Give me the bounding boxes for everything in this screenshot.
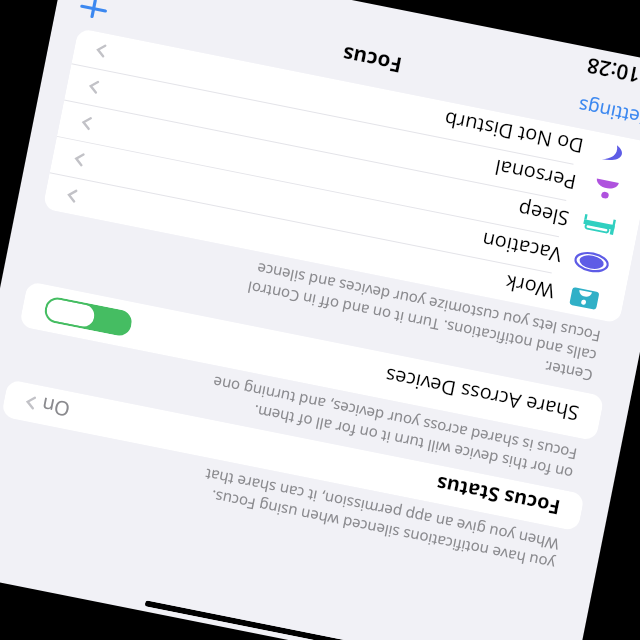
staticText: 10:28: [584, 54, 640, 90]
staticText: Settings: [575, 93, 640, 132]
staticText: On: [39, 391, 72, 423]
staticText: Personal: [492, 153, 578, 196]
button[interactable]: Sleep: [57, 101, 640, 251]
staticText: Focus Status: [434, 470, 562, 521]
button[interactable]: Share Across Devices: [19, 281, 605, 441]
staticText: you have notifications silenced when usi…: [209, 486, 556, 574]
button[interactable]: Vacation: [50, 137, 633, 287]
button[interactable]: Personal: [64, 64, 640, 215]
staticText: Work: [502, 269, 557, 305]
button[interactable]: Settings: [575, 93, 640, 135]
button[interactable]: Do Not Disturb: [71, 28, 640, 178]
button[interactable]: Work: [42, 173, 626, 324]
staticText: Vacation: [479, 226, 564, 269]
staticText: Center.: [542, 357, 594, 386]
staticText: on for this device will turn it on for a…: [251, 401, 575, 484]
staticText: Sleep: [516, 196, 571, 232]
staticText: Focus: [340, 39, 404, 80]
staticText: When you give an app permission, it can …: [203, 465, 560, 555]
staticText: Focus lets you customize your devices an…: [255, 259, 602, 347]
button[interactable]: Focus Status: [1, 379, 585, 532]
staticText: Share Across Devices: [383, 362, 581, 427]
button[interactable]: Add Focus: [79, 0, 108, 19]
button[interactable]: Share Across Devices toggle: [42, 295, 134, 338]
staticText: Focus is shared across your devices, and…: [211, 372, 578, 465]
staticText: calls and notifications. Turn it on and …: [245, 277, 598, 367]
staticText: Do Not Disturb: [441, 106, 586, 160]
